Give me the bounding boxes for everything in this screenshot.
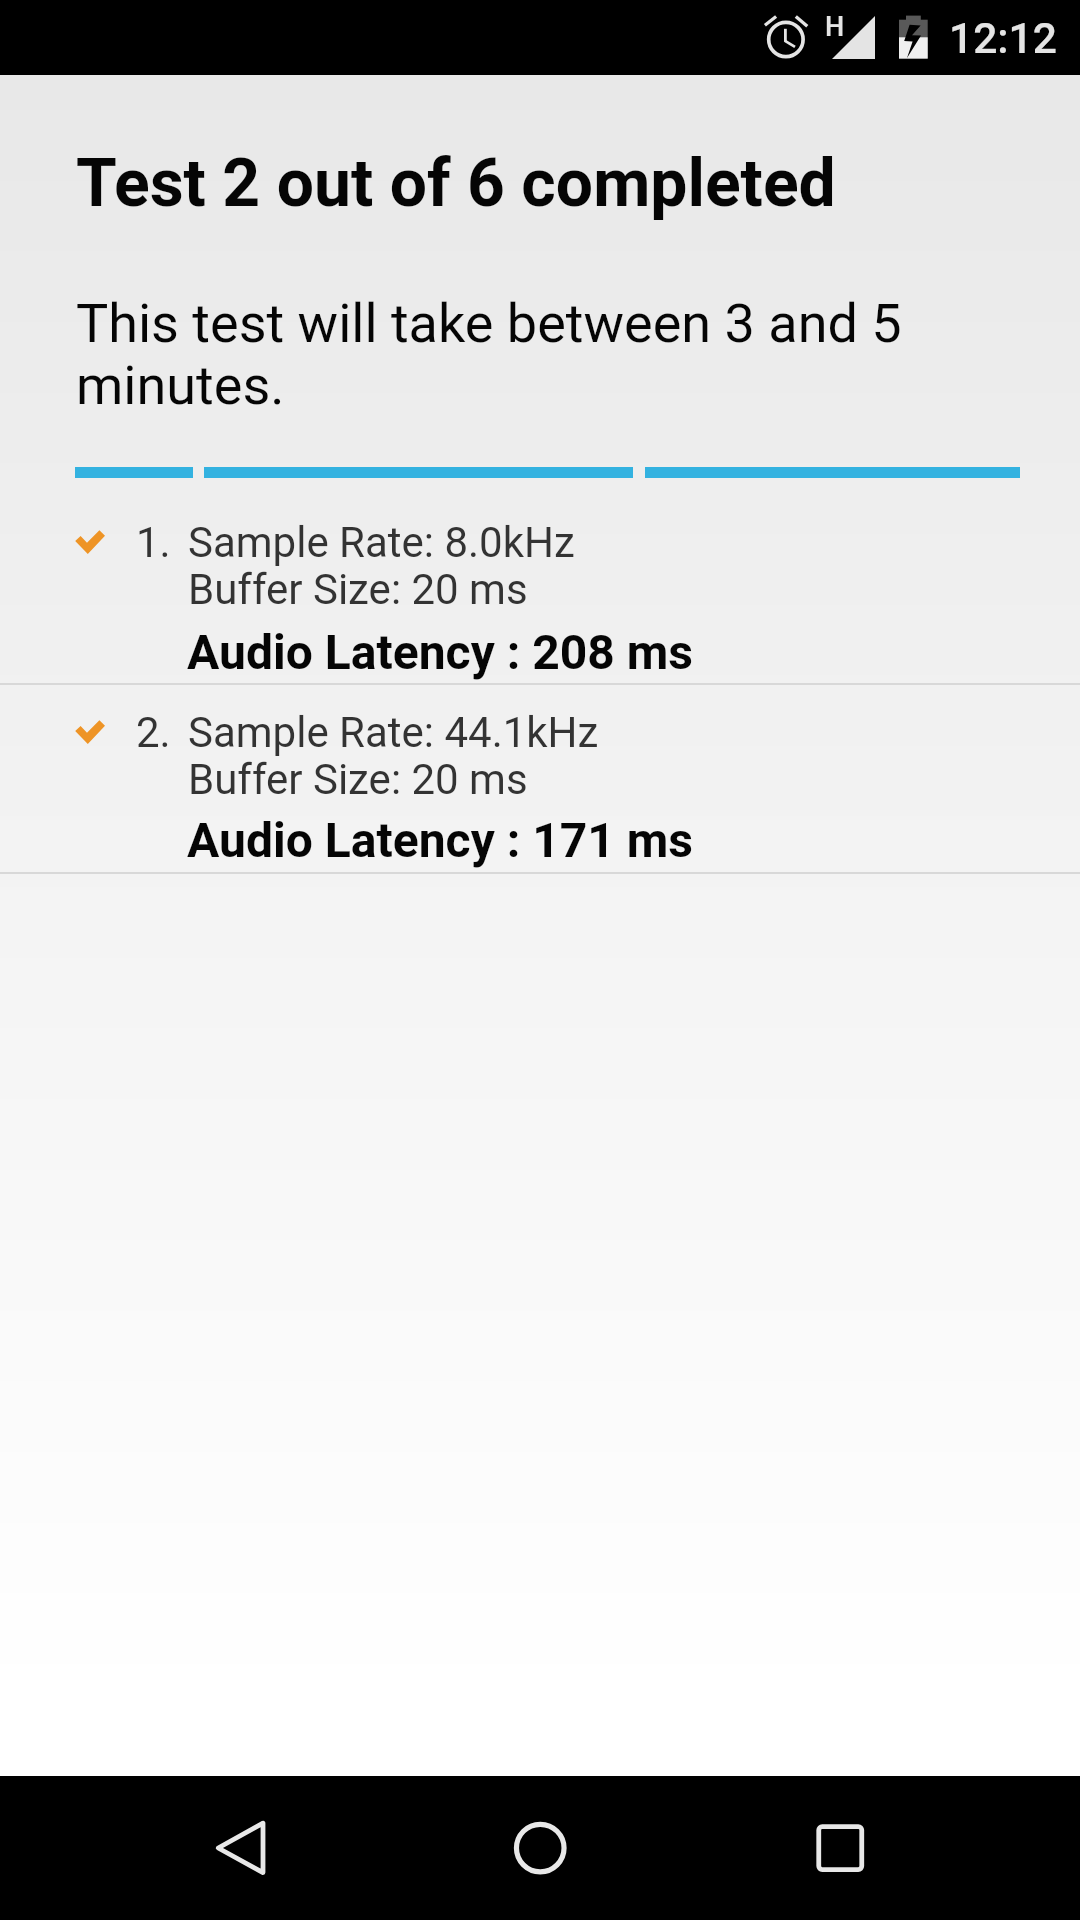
staticText: Audio Latency : 171 ms [187, 812, 694, 868]
button[interactable]: Home [480, 1800, 600, 1920]
button[interactable]: 2. [0, 690, 1080, 873]
staticText: 12:12 [949, 14, 1057, 64]
button[interactable]: Back [180, 1800, 300, 1920]
staticText: Audio Latency : 208 ms [187, 624, 694, 680]
staticText: This test will take between 3 and 5 minu… [76, 292, 966, 418]
button[interactable]: Recents [780, 1800, 900, 1920]
staticText: 2. [136, 708, 171, 757]
staticText: Sample Rate: 8.0kHz Buffer Size: 20 ms [188, 518, 575, 614]
staticText: Sample Rate: 44.1kHz Buffer Size: 20 ms [188, 708, 599, 804]
staticText: 1. [136, 518, 171, 567]
staticText: H [825, 11, 845, 43]
button[interactable]: 1. [0, 500, 1080, 683]
staticText: Test 2 out of 6 completed [76, 145, 836, 222]
